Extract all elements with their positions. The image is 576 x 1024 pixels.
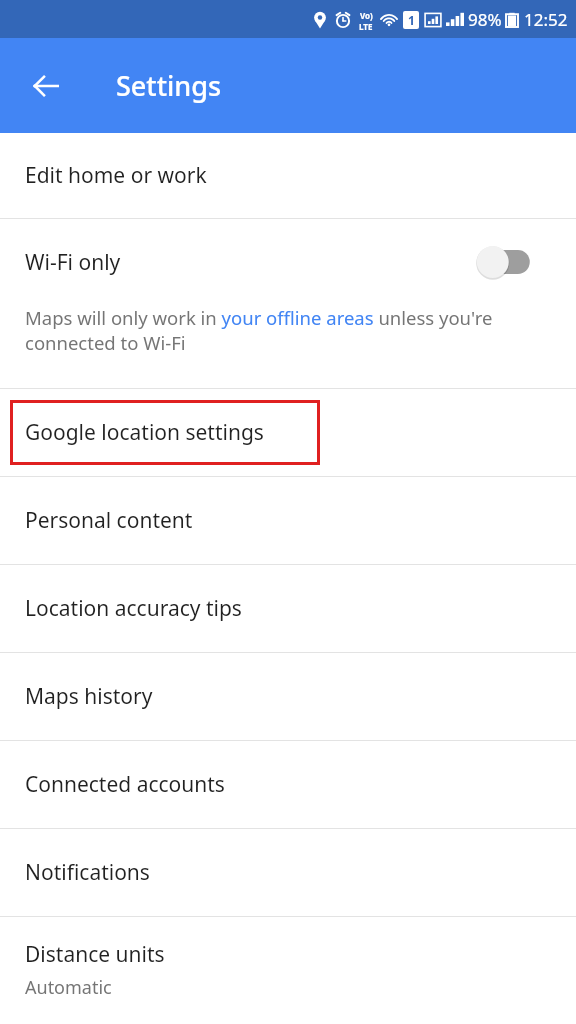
staticText: Personal content — [25, 506, 193, 535]
staticText: Maps will only work in your offline area… — [25, 305, 546, 356]
staticText: 98% — [468, 8, 502, 31]
staticText: Wi-Fi only — [25, 248, 121, 277]
button[interactable]: Maps history — [0, 653, 576, 740]
button[interactable]: Location accuracy tips — [0, 565, 576, 652]
staticText: Maps history — [25, 682, 153, 711]
staticText: Automatic — [25, 975, 112, 1000]
button[interactable]: Distance units — [0, 917, 576, 1024]
staticText: Connected accounts — [25, 770, 225, 799]
button[interactable]: Back — [16, 56, 76, 116]
button[interactable]: Notifications — [0, 829, 576, 916]
staticText: Edit home or work — [25, 161, 207, 190]
staticText: Vo) — [360, 10, 373, 21]
staticText: LTE — [359, 21, 373, 30]
staticText: Settings — [116, 67, 222, 104]
button[interactable]: Google location settings — [0, 389, 576, 476]
button[interactable]: Wi-Fi only toggle — [476, 245, 532, 279]
button[interactable]: Edit home or work — [0, 133, 576, 218]
staticText: Location accuracy tips — [25, 594, 242, 623]
button[interactable]: Personal content — [0, 477, 576, 564]
staticText: 1 — [408, 12, 415, 28]
staticText: Distance units — [25, 940, 165, 969]
button[interactable]: Connected accounts — [0, 741, 576, 828]
staticText: Notifications — [25, 858, 150, 887]
button[interactable]: Wi-Fi only — [0, 219, 576, 388]
staticText: 12:52 — [524, 8, 568, 31]
staticText: Google location settings — [25, 418, 264, 447]
